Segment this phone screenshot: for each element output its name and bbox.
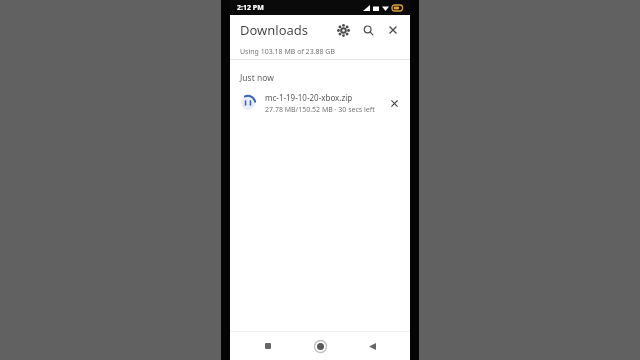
button[interactable]: Close [382, 19, 404, 41]
staticText: mc-1-19-10-20-xbox.zip [265, 92, 353, 103]
staticText: 2:12 PM [237, 3, 264, 13]
staticText: 27.78 MB/150.52 MB · 30 secs left [265, 105, 375, 115]
staticText: Using 103.18 MB of 23.88 GB [240, 47, 335, 57]
button[interactable]: Search [357, 19, 379, 41]
button[interactable]: mc-1-19-10-20-xbox.zip [230, 86, 410, 120]
staticText: Just now [240, 72, 274, 84]
button[interactable]: Cancel download [384, 93, 404, 113]
button[interactable]: Back [358, 332, 386, 360]
button[interactable]: Settings [332, 19, 354, 41]
button[interactable]: Recents [254, 332, 282, 360]
button[interactable]: Home [306, 332, 334, 360]
staticText: Downloads [240, 21, 309, 39]
